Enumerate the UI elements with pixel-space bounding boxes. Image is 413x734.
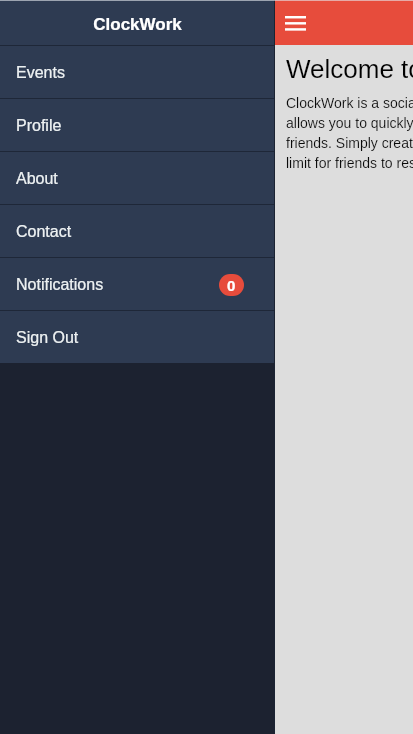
button[interactable]: Notifications (0, 258, 275, 310)
button[interactable]: Events (0, 46, 275, 98)
button[interactable]: Sign Out (0, 311, 275, 363)
staticText: Notifications (16, 276, 104, 294)
button[interactable]: Profile (0, 99, 275, 151)
staticText: About (16, 170, 58, 188)
staticText: ClockWork is a social event planning web… (286, 95, 413, 171)
staticText: Events (16, 64, 65, 82)
button[interactable]: Open navigation menu (280, 8, 310, 38)
button[interactable]: Contact (0, 205, 275, 257)
staticText: 0 (227, 277, 236, 294)
staticText: Welcome to ClockWork! (286, 54, 413, 83)
staticText: Sign Out (16, 329, 79, 347)
staticText: Contact (16, 223, 72, 241)
staticText: ClockWork (93, 15, 182, 34)
button[interactable]: About (0, 152, 275, 204)
staticText: Profile (16, 117, 62, 135)
